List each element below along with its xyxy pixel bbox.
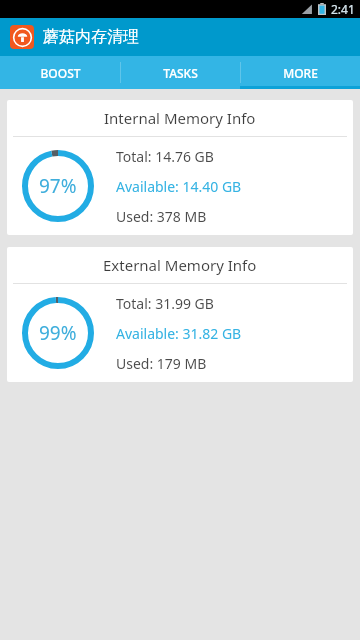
staticText: Internal Memory Info [104,108,256,128]
staticText: Available: 14.40 GB [116,177,242,196]
staticText: TASKS [163,65,198,81]
staticText: MORE [283,65,318,81]
button[interactable]: MORE [241,56,360,89]
staticText: 97% [39,173,77,199]
staticText: BOOST [40,65,81,81]
button[interactable]: BOOST [0,56,120,89]
staticText: Total: 31.99 GB [116,294,214,313]
staticText: 蘑菇内存清理 [43,27,139,47]
button[interactable]: External Memory Info [7,247,353,382]
button[interactable]: Internal Memory Info [7,100,353,235]
staticText: 99% [39,320,77,346]
staticText: Total: 14.76 GB [116,147,214,166]
staticText: External Memory Info [103,255,257,275]
staticText: 2:41 [331,1,355,17]
staticText: Available: 31.82 GB [116,324,242,343]
button[interactable]: TASKS [121,56,240,89]
button[interactable]: App icon [10,25,34,49]
staticText: Used: 378 MB [116,207,207,226]
staticText: Used: 179 MB [116,354,207,373]
